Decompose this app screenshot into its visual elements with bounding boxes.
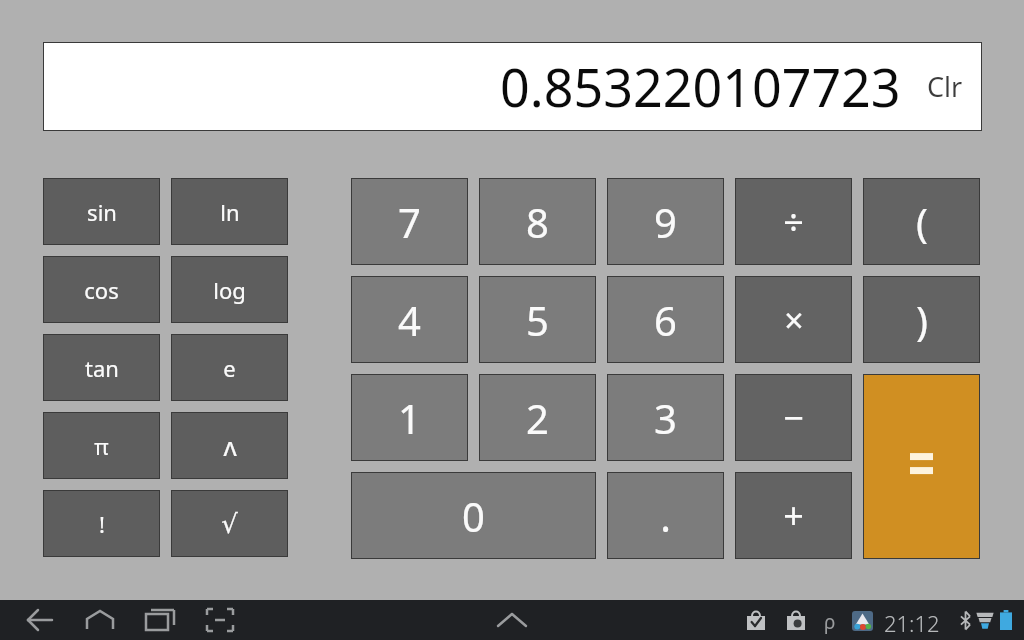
other: App icon bbox=[852, 611, 873, 631]
other: App notification bbox=[746, 611, 766, 631]
button[interactable]: 4 bbox=[352, 277, 467, 362]
button[interactable]: 5 bbox=[480, 277, 595, 362]
button[interactable]: 6 bbox=[608, 277, 723, 362]
staticText: 6 bbox=[654, 293, 677, 347]
button[interactable]: e bbox=[172, 335, 287, 400]
button[interactable]: ʌ bbox=[172, 413, 287, 478]
staticText: . bbox=[660, 489, 671, 543]
button[interactable]: tan bbox=[44, 335, 159, 400]
staticText: log bbox=[213, 275, 246, 305]
button[interactable]: 7 bbox=[352, 179, 467, 264]
staticText: sin bbox=[87, 197, 117, 227]
staticText: e bbox=[223, 353, 236, 383]
staticText: ʌ bbox=[223, 428, 237, 463]
other: Store notification bbox=[786, 611, 806, 631]
button[interactable]: ) bbox=[864, 277, 979, 362]
button[interactable]: . bbox=[608, 473, 723, 558]
staticText: 3 bbox=[654, 391, 677, 445]
button[interactable]: sin bbox=[44, 179, 159, 244]
button[interactable]: − bbox=[736, 375, 851, 460]
staticText: ÷ bbox=[783, 197, 804, 246]
button[interactable]: 1 bbox=[352, 375, 467, 460]
staticText: 1 bbox=[398, 391, 421, 445]
staticText: 4 bbox=[398, 293, 421, 347]
button[interactable]: 9 bbox=[608, 179, 723, 264]
staticText: 9 bbox=[654, 195, 677, 249]
staticText: ) bbox=[916, 293, 928, 347]
button[interactable] bbox=[864, 375, 979, 558]
staticText: 5 bbox=[526, 293, 549, 347]
staticText: π bbox=[94, 431, 109, 461]
other: Wi-Fi bbox=[976, 612, 994, 629]
button[interactable]: Recent apps bbox=[140, 606, 180, 634]
staticText: ln bbox=[220, 197, 240, 227]
staticText: 2 bbox=[526, 391, 549, 445]
button[interactable]: 0 bbox=[352, 473, 595, 558]
button[interactable]: 0.853220107723 bbox=[44, 43, 981, 130]
staticText: ρ bbox=[824, 609, 836, 635]
staticText: × bbox=[784, 297, 804, 343]
button[interactable]: √ bbox=[172, 491, 287, 556]
button[interactable]: cos bbox=[44, 257, 159, 322]
button[interactable]: 2 bbox=[480, 375, 595, 460]
button[interactable]: log bbox=[172, 257, 287, 322]
staticText: ( bbox=[916, 195, 928, 249]
button[interactable]: π bbox=[44, 413, 159, 478]
staticText: cos bbox=[84, 275, 119, 305]
button[interactable]: ÷ bbox=[736, 179, 851, 264]
staticText: Clr bbox=[927, 68, 963, 105]
staticText: √ bbox=[221, 509, 238, 539]
staticText: ! bbox=[99, 509, 105, 539]
button[interactable]: 3 bbox=[608, 375, 723, 460]
button[interactable]: Back bbox=[20, 606, 60, 634]
button[interactable]: ( bbox=[864, 179, 979, 264]
button[interactable]: Clr bbox=[923, 62, 967, 111]
staticText: + bbox=[783, 491, 804, 540]
button[interactable]: × bbox=[736, 277, 851, 362]
button[interactable]: Show navigation bbox=[490, 606, 534, 634]
staticText: 8 bbox=[526, 195, 549, 249]
other: Bluetooth bbox=[959, 611, 972, 630]
button[interactable]: ! bbox=[44, 491, 159, 556]
button[interactable]: Screenshot bbox=[200, 606, 240, 634]
staticText: 21:12 bbox=[884, 608, 940, 638]
other: Battery bbox=[1000, 610, 1012, 630]
staticText: 0 bbox=[462, 489, 485, 543]
staticText: tan bbox=[85, 353, 119, 383]
button[interactable]: Home bbox=[80, 606, 120, 634]
staticText: 0.853220107723 bbox=[500, 51, 901, 122]
button[interactable]: 8 bbox=[480, 179, 595, 264]
staticText: − bbox=[783, 393, 804, 442]
button[interactable]: + bbox=[736, 473, 851, 558]
button[interactable]: ln bbox=[172, 179, 287, 244]
staticText: 7 bbox=[398, 195, 421, 249]
